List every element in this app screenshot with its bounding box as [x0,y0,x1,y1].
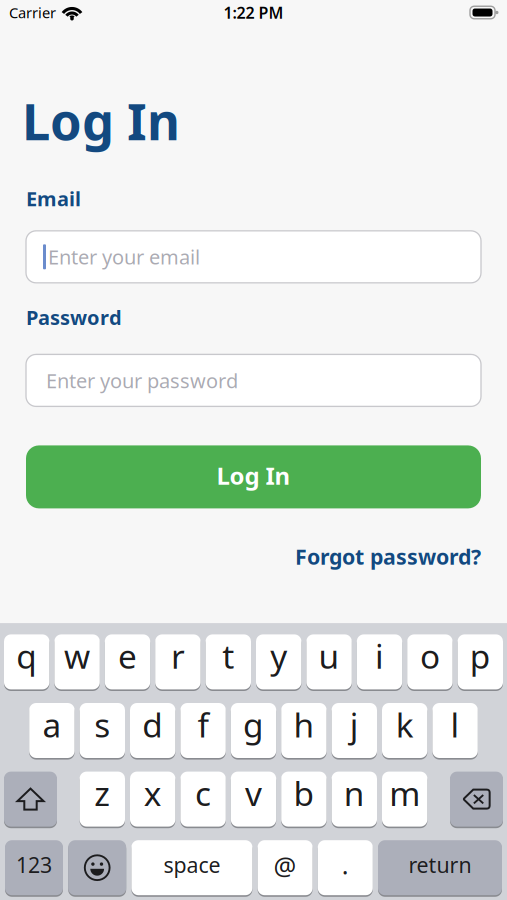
button[interactable]: r [155,634,201,690]
staticText: o [420,634,440,678]
button[interactable]: b [281,771,327,827]
button[interactable]: Emoji [68,839,126,896]
staticText: r [171,634,185,678]
button[interactable]: l [432,702,478,759]
staticText: d [142,702,163,747]
staticText: Enter your email [48,244,200,270]
staticText: b [293,771,314,815]
staticText: Password [26,304,122,330]
button[interactable]: n [332,771,377,827]
button[interactable]: v [231,771,276,827]
button[interactable]: o [407,634,453,690]
button[interactable]: a [29,702,75,759]
button[interactable]: s [80,702,125,759]
button[interactable]: return [378,839,502,896]
button[interactable]: h [281,702,327,759]
staticText: p [470,634,491,678]
staticText: Log In [22,87,180,154]
button[interactable]: u [306,634,352,690]
staticText: . [342,848,349,881]
staticText: k [396,702,414,747]
staticText: w [64,634,90,678]
button[interactable]: k [382,702,427,759]
staticText: m [389,771,420,815]
staticText: z [94,771,110,815]
button[interactable]: Enter your email [26,231,481,283]
button[interactable]: d [130,702,175,759]
button[interactable]: . [318,839,373,896]
staticText: c [195,771,211,815]
button[interactable]: q [4,634,49,690]
staticText: @ [274,849,297,882]
button[interactable]: 123 [5,839,63,896]
staticText: return [408,850,471,879]
staticText: t [222,634,234,678]
staticText: Enter your password [46,367,238,394]
staticText: u [319,634,340,678]
button[interactable]: y [256,634,301,690]
staticText: Log In [216,459,290,491]
button[interactable]: Enter your password [26,354,481,406]
staticText: q [16,634,37,678]
staticText: x [144,771,162,815]
button[interactable]: p [458,634,503,690]
button[interactable]: c [180,771,226,827]
staticText: g [243,702,264,747]
button[interactable]: space [131,839,252,896]
staticText: space [163,850,220,879]
button[interactable]: i [357,634,402,690]
button[interactable]: @ [258,839,313,896]
staticText: 1:22 PM [223,2,283,23]
staticText: e [118,634,137,678]
button[interactable]: Shift [4,771,57,827]
button[interactable]: g [231,702,276,759]
staticText: 123 [16,850,52,879]
button[interactable]: w [54,634,100,690]
button[interactable]: f [180,702,226,759]
staticText: y [270,634,287,678]
staticText: Carrier [9,3,56,22]
staticText: s [94,702,110,747]
button[interactable]: Log In [26,445,481,508]
button[interactable]: e [105,634,150,690]
staticText: h [293,702,314,747]
button[interactable]: Forgot password? [295,542,481,571]
button[interactable]: Delete [450,771,503,827]
staticText: v [245,771,262,815]
staticText: i [375,634,384,678]
button[interactable]: z [80,771,125,827]
staticText: n [344,771,365,815]
button[interactable]: x [130,771,175,827]
staticText: a [42,702,61,747]
staticText: Forgot password? [295,542,481,571]
staticText: Email [26,185,81,212]
button[interactable]: j [332,702,377,759]
staticText: l [451,702,460,747]
button[interactable]: t [206,634,251,690]
button[interactable]: m [382,771,427,827]
staticText: j [350,702,359,747]
staticText: f [198,702,209,747]
